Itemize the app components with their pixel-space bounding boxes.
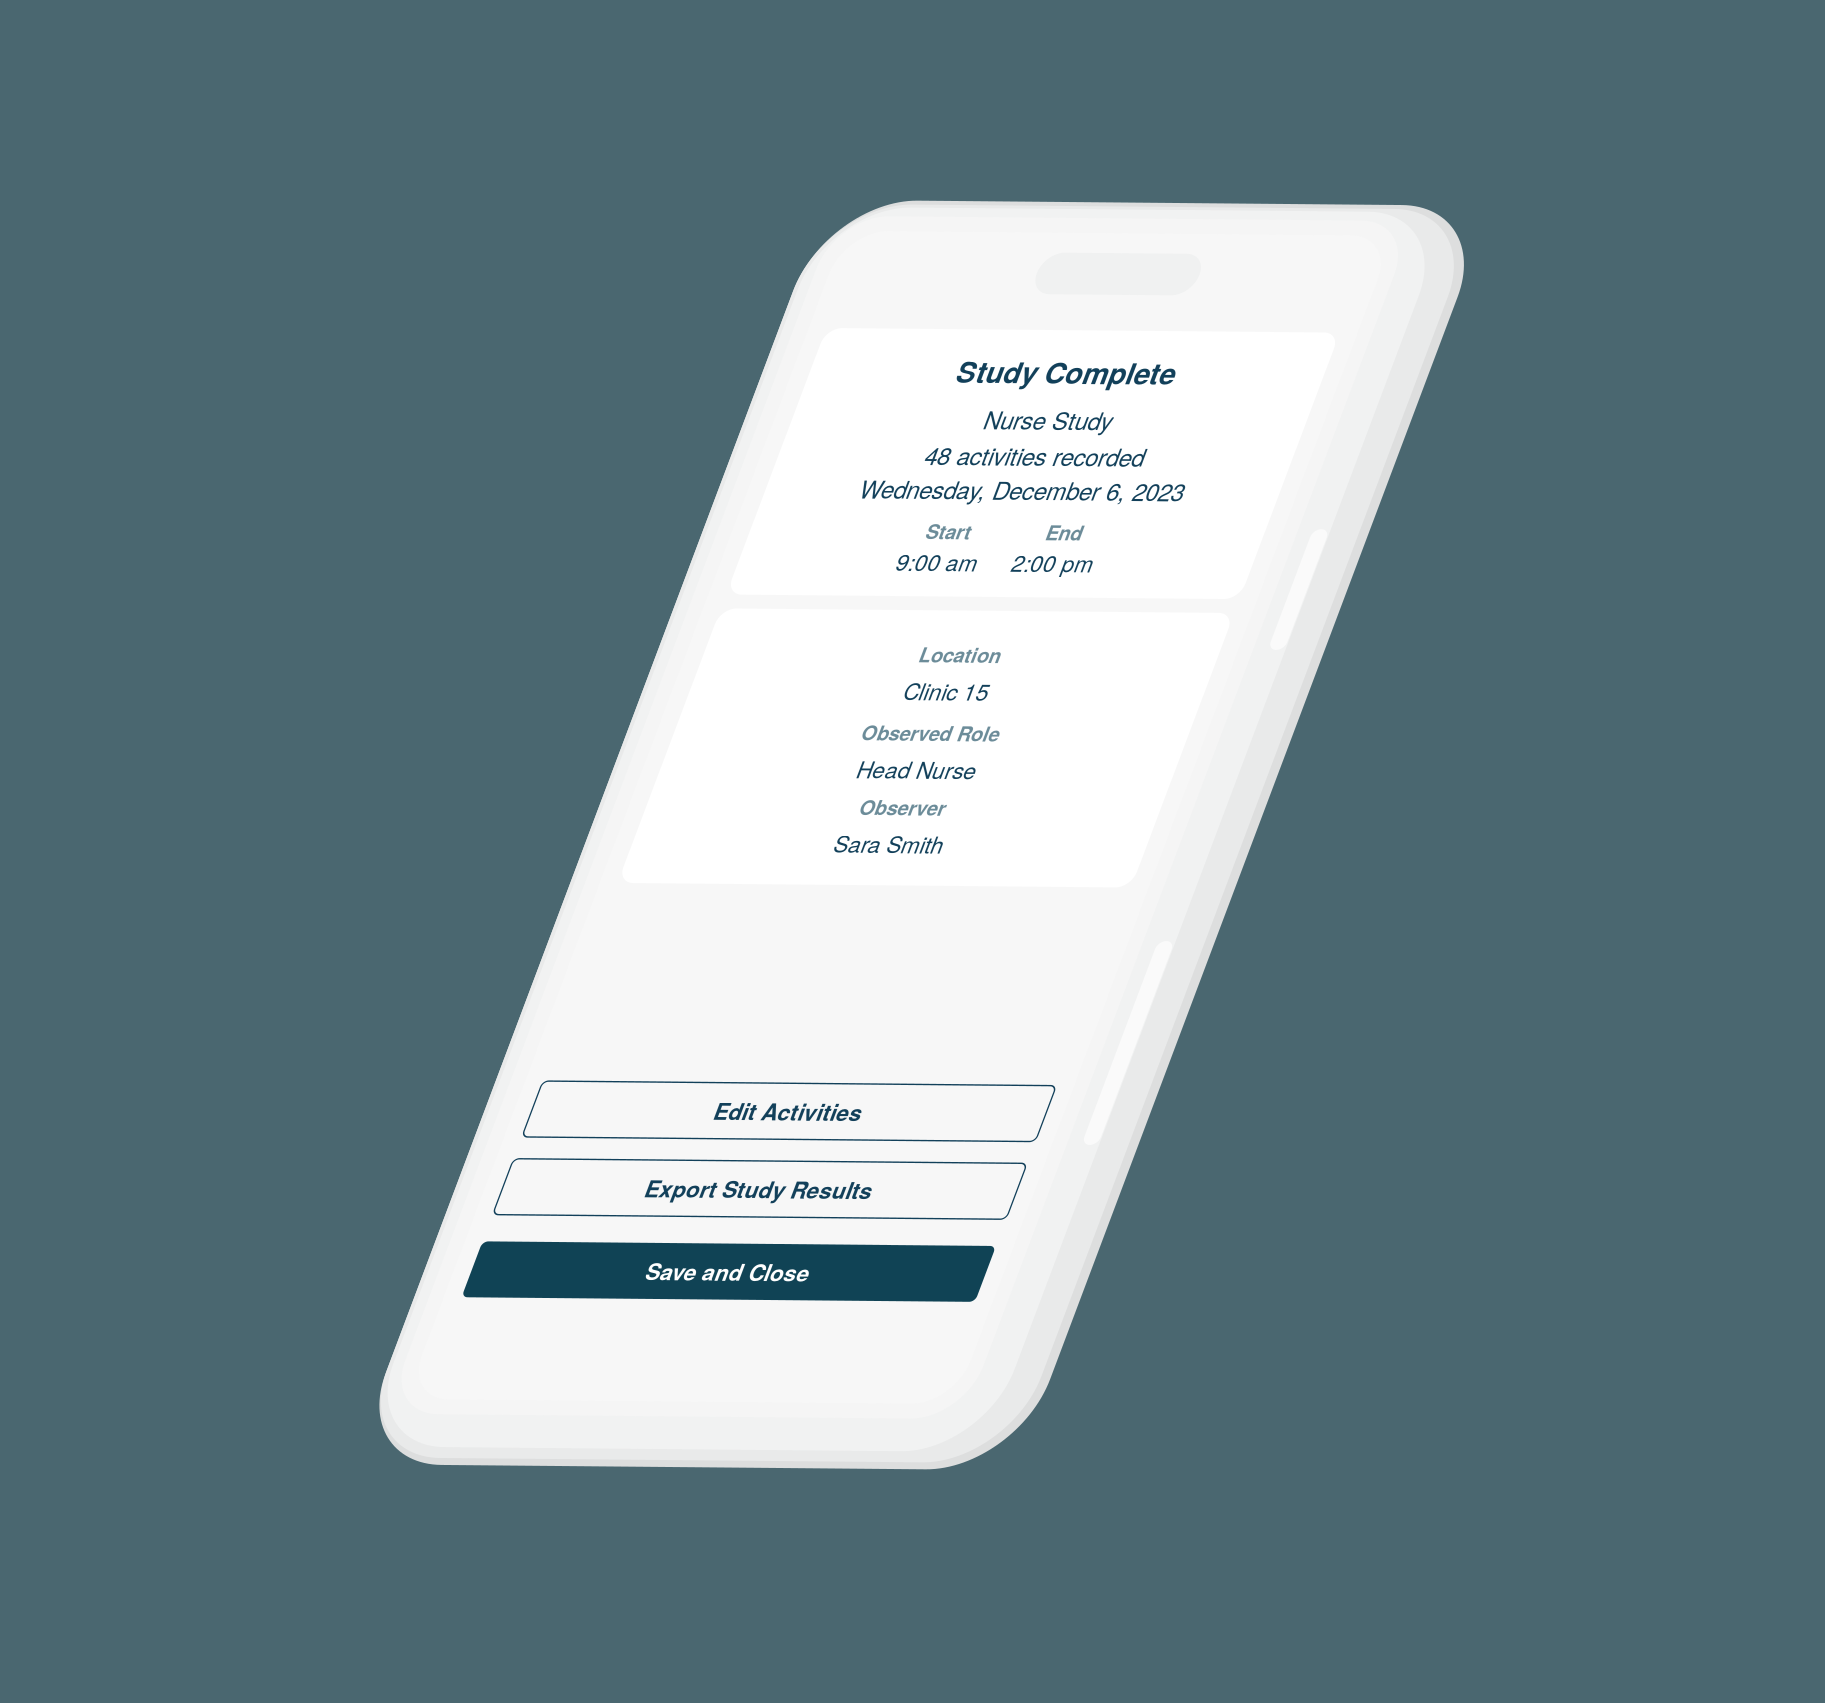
staticText: Edit Activities xyxy=(664,1099,815,1131)
staticText: Export Study Results xyxy=(624,1177,856,1210)
staticText: Study Complete xyxy=(628,347,851,389)
staticText: Nurse Study xyxy=(674,399,805,433)
staticText: 48 activities recorded xyxy=(628,435,852,470)
staticText: 9:00 am xyxy=(639,544,722,576)
staticText: Wednesday, December 6, 2023 xyxy=(574,470,905,504)
staticText: Start xyxy=(658,515,704,544)
staticText: Save and Close xyxy=(656,1260,823,1293)
button[interactable]: Export Study Results xyxy=(478,1165,1002,1222)
button[interactable]: Edit Activities xyxy=(478,1087,1002,1143)
button[interactable]: Save and Close xyxy=(478,1248,1002,1305)
